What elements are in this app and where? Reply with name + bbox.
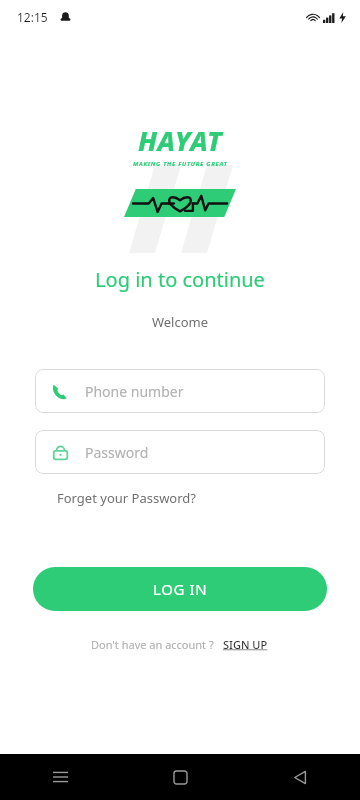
staticText: Password — [85, 443, 149, 462]
staticText: Log in to continue — [0, 266, 360, 293]
staticText: Forget your Password? — [57, 489, 196, 507]
staticText: Don't have an account ? — [91, 637, 214, 652]
button[interactable]: Phone number — [35, 369, 325, 413]
staticText: LOG IN — [153, 579, 208, 599]
button[interactable]: Recent apps — [0, 754, 120, 800]
button[interactable]: SIGN UP — [222, 635, 269, 654]
button[interactable]: Forget your Password? — [55, 486, 198, 510]
staticText: MAKING THE FUTURE GREAT — [133, 160, 228, 168]
staticText: HAYAT — [138, 122, 223, 159]
staticText: Phone number — [85, 382, 184, 401]
staticText: 12:15 — [17, 9, 48, 25]
button[interactable]: Password — [35, 430, 325, 474]
button[interactable]: LOG IN — [33, 567, 327, 611]
button[interactable]: Home — [120, 754, 240, 800]
staticText: SIGN UP — [223, 637, 268, 652]
button[interactable]: Back — [240, 754, 360, 800]
staticText: Welcome — [0, 313, 360, 331]
